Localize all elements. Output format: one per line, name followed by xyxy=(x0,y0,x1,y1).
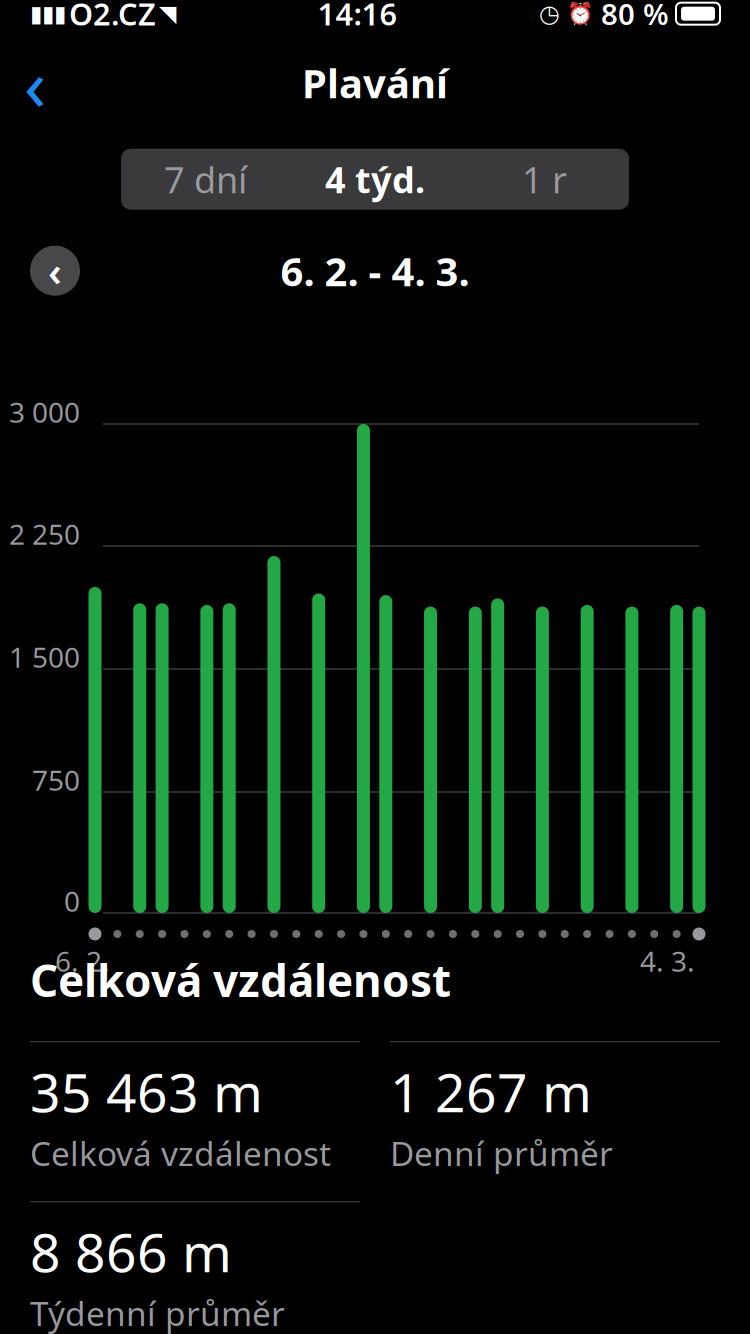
staticText: Celková vzdálenost xyxy=(30,951,451,1009)
staticText: 7 dní xyxy=(164,155,247,203)
staticText: Celková vzdálenost xyxy=(30,1131,331,1175)
staticText: 1 500 xyxy=(9,638,80,676)
staticText: 2 250 xyxy=(9,515,80,553)
button[interactable]: Předchozí období xyxy=(30,246,80,296)
staticText: 4 týd. xyxy=(325,155,425,203)
staticText: 14:16 xyxy=(317,0,397,34)
staticText: 6. 2. xyxy=(55,942,110,980)
staticText: ⏰ xyxy=(567,1,594,26)
staticText: ◥ xyxy=(159,1,176,26)
staticText: 750 xyxy=(32,761,80,799)
staticText: 80 % xyxy=(601,0,669,33)
staticText: ▮▮▮ xyxy=(30,1,66,26)
button[interactable]: 1 r xyxy=(460,149,629,210)
staticText: 0 xyxy=(64,882,80,920)
staticText: Denní průměr xyxy=(390,1131,613,1175)
staticText: Plavání xyxy=(302,56,448,109)
staticText: Týdenní průměr xyxy=(30,1291,285,1334)
staticText: 1 r xyxy=(522,155,567,203)
button[interactable]: Zpět xyxy=(0,48,70,118)
staticText: 35 463 m xyxy=(30,1056,263,1127)
staticText: ‹ xyxy=(48,244,62,297)
button[interactable]: 4 týd. xyxy=(290,149,460,210)
staticText: O2.CZ xyxy=(69,0,156,34)
button[interactable]: 7 dní xyxy=(121,149,290,210)
staticText: 1 267 m xyxy=(390,1056,592,1127)
staticText: ◷ xyxy=(539,0,560,27)
staticText: 6. 2. - 4. 3. xyxy=(280,244,469,297)
staticText: ‹ xyxy=(24,35,46,130)
staticText: 8 866 m xyxy=(30,1216,232,1287)
staticText: 3 000 xyxy=(9,393,80,431)
staticText: 4. 3. xyxy=(640,942,695,980)
